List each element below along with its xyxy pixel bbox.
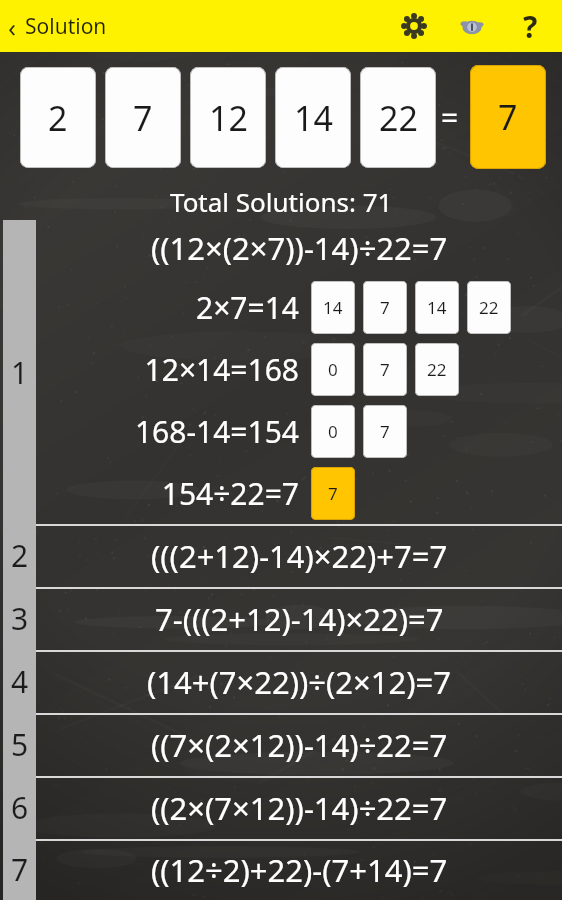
button[interactable]: 4	[0, 650, 562, 713]
button[interactable]: Help	[508, 4, 552, 48]
button[interactable]: 22	[415, 343, 459, 396]
button[interactable]: 12	[190, 67, 266, 168]
staticText: 2	[48, 95, 68, 141]
staticText: 7	[498, 94, 518, 140]
staticText: ?	[523, 6, 538, 47]
staticText: 22	[479, 296, 499, 319]
button[interactable]: 3	[0, 587, 562, 650]
staticText: (((2+12)-14)×22)+7=7	[151, 535, 448, 577]
staticText: 7	[380, 420, 390, 443]
staticText: 7	[380, 296, 390, 319]
button[interactable]: 0	[311, 343, 355, 396]
button[interactable]: 22	[360, 67, 436, 168]
staticText: ((12×(2×7))-14)÷22=7	[151, 227, 448, 269]
staticText: ((2×(7×12))-14)÷22=7	[151, 787, 448, 829]
staticText: 5	[11, 724, 29, 765]
staticText: 3	[11, 598, 29, 639]
staticText: 22	[379, 95, 418, 141]
staticText: 2×7=14	[0, 287, 299, 328]
staticText: 14	[323, 296, 343, 319]
staticText: ((12÷2)+22)-(7+14)=7	[151, 849, 448, 891]
button[interactable]: 7	[0, 839, 562, 900]
button[interactable]: 7	[363, 405, 407, 458]
staticText: 12	[209, 95, 248, 141]
button[interactable]: ‹	[8, 9, 107, 44]
button[interactable]: 6	[0, 776, 562, 839]
button[interactable]: 7	[105, 67, 181, 168]
button[interactable]: 7	[363, 343, 407, 396]
button[interactable]: 14	[311, 281, 355, 334]
staticText: 168-14=154	[0, 411, 299, 452]
button[interactable]: 7	[363, 281, 407, 334]
staticText: 14	[427, 296, 447, 319]
staticText: 6	[11, 787, 29, 828]
button[interactable]: 2	[0, 524, 562, 587]
button[interactable]: 5	[0, 713, 562, 776]
staticText: =	[441, 97, 459, 138]
staticText: ‹	[8, 9, 17, 44]
staticText: 7	[380, 358, 390, 381]
staticText: 0	[328, 420, 338, 443]
staticText: Solution	[25, 12, 107, 41]
button[interactable]: Coins	[450, 4, 494, 48]
staticText: 7	[11, 849, 29, 890]
staticText: Total Solutions: 71	[170, 184, 393, 219]
staticText: 7-(((2+12)-14)×22)=7	[155, 598, 444, 640]
staticText: 1	[11, 352, 29, 393]
button[interactable]: 22	[467, 281, 511, 334]
staticText: 7	[328, 482, 338, 505]
button[interactable]: Settings	[392, 4, 436, 48]
button[interactable]: 0	[311, 405, 355, 458]
staticText: 0	[328, 358, 338, 381]
staticText: 154÷22=7	[0, 473, 299, 514]
button[interactable]: 14	[275, 67, 351, 168]
staticText: 7	[133, 95, 153, 141]
button[interactable]: 7	[311, 467, 355, 520]
button[interactable]: 7	[470, 65, 546, 169]
staticText: (14+(7×22))÷(2×12)=7	[147, 661, 452, 703]
staticText: ((7×(2×12))-14)÷22=7	[151, 724, 448, 766]
staticText: 14	[294, 95, 333, 141]
button[interactable]: 2	[20, 67, 96, 168]
staticText: 4	[11, 661, 29, 702]
button[interactable]: 14	[415, 281, 459, 334]
button[interactable]: ((12×(2×7))-14)÷22=7	[0, 220, 562, 524]
staticText: 12×14=168	[0, 349, 299, 390]
staticText: 22	[427, 358, 447, 381]
staticText: 2	[11, 535, 29, 576]
